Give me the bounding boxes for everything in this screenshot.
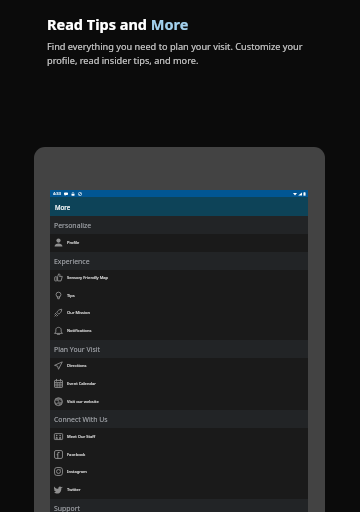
staticText: Read Tips and More: [47, 14, 189, 34]
staticText: Support: [54, 504, 81, 512]
staticText: Event Calendar: [67, 381, 96, 386]
staticText: More: [55, 203, 71, 211]
button[interactable]: Directions: [50, 357, 308, 375]
staticText: 4:33: [53, 191, 61, 196]
button[interactable]: Tips: [50, 287, 308, 305]
staticText: Directions: [67, 363, 87, 368]
staticText: Tips: [67, 293, 75, 298]
button[interactable]: Facebook: [50, 446, 308, 464]
staticText: Instagram: [67, 469, 87, 474]
staticText: Experience: [54, 257, 90, 266]
button[interactable]: Notifications: [50, 322, 308, 340]
button[interactable]: Our Mission: [50, 304, 308, 322]
staticText: Connect With Us: [54, 415, 108, 424]
staticText: Profile: [67, 240, 80, 245]
staticText: Sensory Friendly Map: [67, 275, 109, 280]
button[interactable]: Visit our website: [50, 393, 308, 411]
staticText: Plan Your Visit: [54, 345, 100, 354]
staticText: Facebook: [67, 452, 86, 457]
button[interactable]: Instagram: [50, 463, 308, 481]
button[interactable]: Event Calendar: [50, 375, 308, 393]
staticText: Meet Our Staff: [67, 434, 96, 439]
staticText: Find everything you need to plan your vi…: [47, 40, 320, 67]
button[interactable]: Twitter: [50, 481, 308, 499]
button[interactable]: Meet Our Staff: [50, 428, 308, 446]
staticText: Twitter: [67, 487, 81, 492]
button[interactable]: Profile: [50, 234, 308, 252]
staticText: Personalize: [54, 221, 92, 230]
staticText: Notifications: [67, 328, 92, 333]
staticText: Our Mission: [67, 310, 91, 315]
staticText: Visit our website: [67, 399, 99, 404]
button[interactable]: Sensory Friendly Map: [50, 269, 308, 287]
